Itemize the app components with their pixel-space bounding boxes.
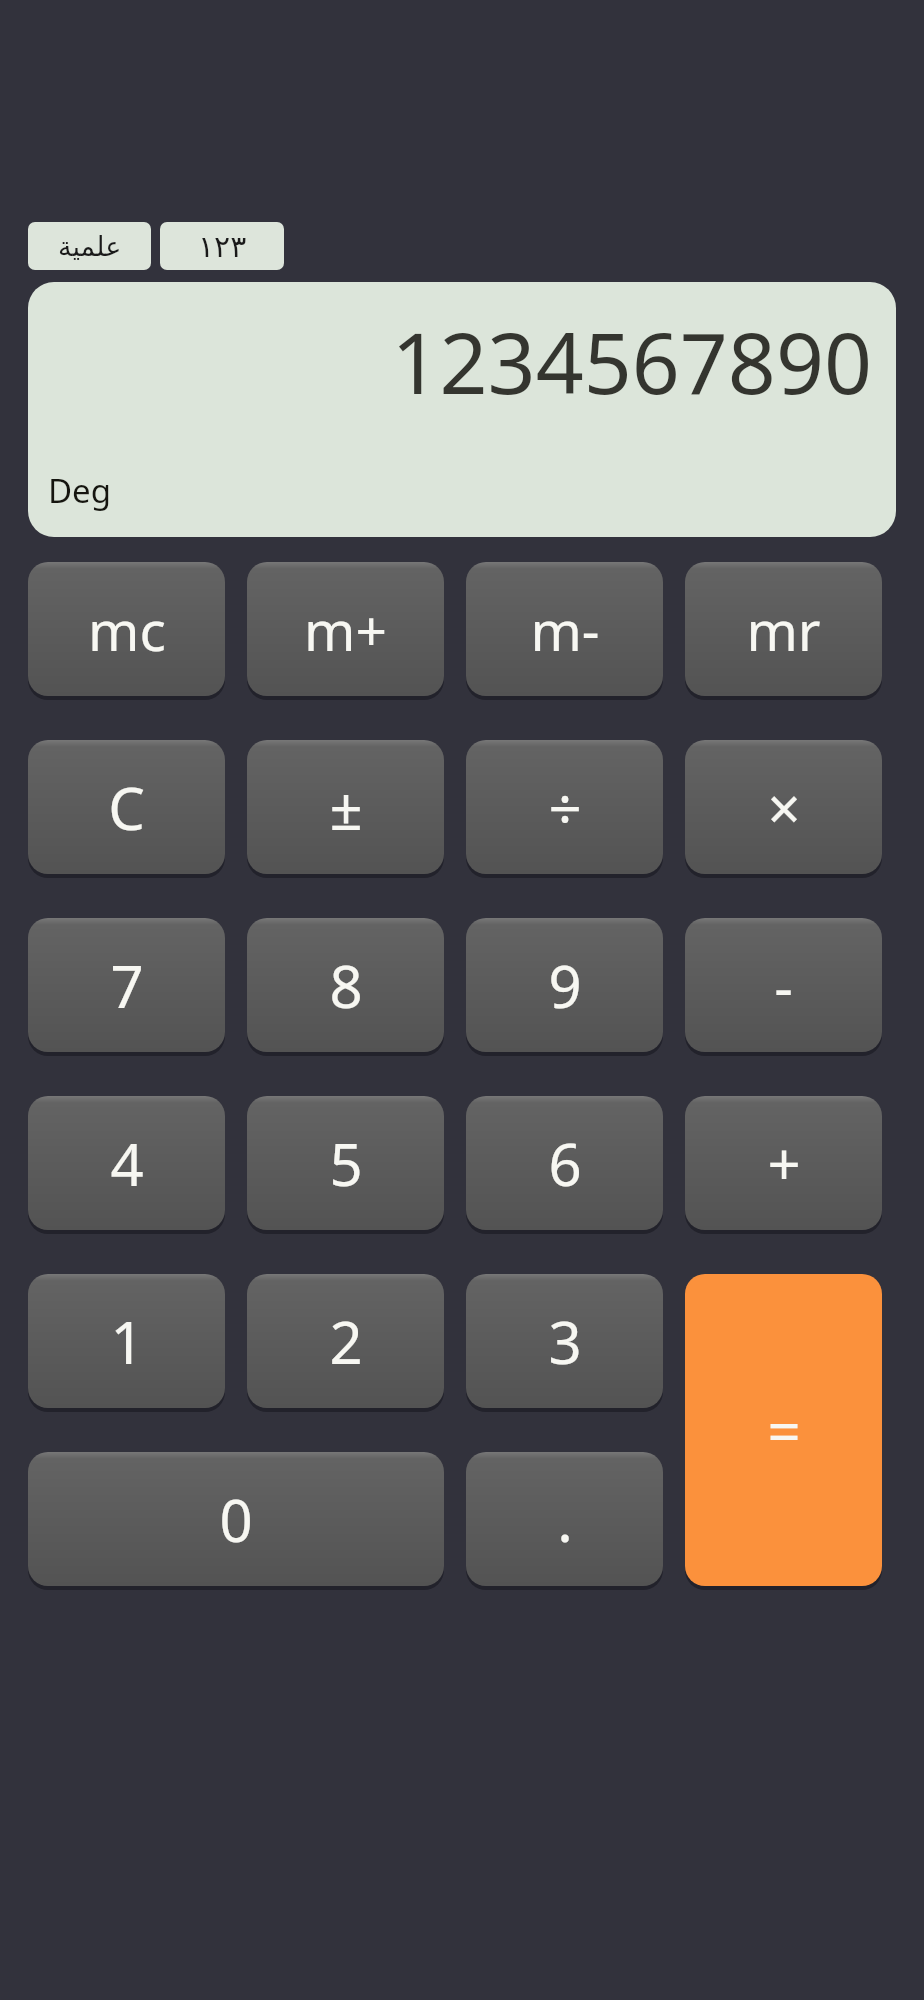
staticText: 2	[329, 1302, 363, 1381]
button[interactable]: 5	[247, 1096, 444, 1230]
button[interactable]: 0	[28, 1452, 444, 1586]
staticText: ÷	[548, 768, 582, 847]
staticText: ١٢٣	[198, 229, 247, 264]
staticText: Deg	[48, 468, 111, 513]
staticText: .	[557, 1480, 573, 1559]
button[interactable]: 8	[247, 918, 444, 1052]
staticText: ±	[329, 768, 363, 847]
button[interactable]: 3	[466, 1274, 663, 1408]
button[interactable]: mr	[685, 562, 882, 696]
staticText: -	[774, 946, 793, 1025]
button[interactable]: 1	[28, 1274, 225, 1408]
staticText: علمية	[58, 231, 122, 262]
button[interactable]: Equals	[685, 1274, 882, 1586]
button[interactable]: علمية	[28, 222, 151, 270]
button[interactable]: 9	[466, 918, 663, 1052]
button[interactable]: m+	[247, 562, 444, 696]
staticText: +	[767, 1124, 801, 1203]
staticText: 6	[548, 1124, 582, 1203]
staticText: 1	[110, 1302, 144, 1381]
button[interactable]: 7	[28, 918, 225, 1052]
button[interactable]: Plus minus sign	[247, 740, 444, 874]
staticText: mc	[88, 592, 166, 667]
staticText: ×	[767, 768, 801, 847]
staticText: 4	[110, 1124, 144, 1203]
button[interactable]: 6	[466, 1096, 663, 1230]
button[interactable]: Minus	[685, 918, 882, 1052]
button[interactable]: 4	[28, 1096, 225, 1230]
staticText: mr	[746, 592, 821, 667]
staticText: 3	[548, 1302, 582, 1381]
staticText: 0	[219, 1480, 253, 1559]
staticText: m+	[304, 592, 387, 667]
staticText: 7	[110, 946, 144, 1025]
staticText: 8	[329, 946, 363, 1025]
button[interactable]: Divide	[466, 740, 663, 874]
staticText: m-	[530, 592, 600, 667]
button[interactable]: Decimal point	[466, 1452, 663, 1586]
button[interactable]: m-	[466, 562, 663, 696]
staticText: 9	[548, 946, 582, 1025]
staticText: 1234567890	[391, 304, 872, 418]
staticText: =	[767, 1391, 801, 1470]
button[interactable]: 2	[247, 1274, 444, 1408]
staticText: 5	[329, 1124, 363, 1203]
button[interactable]: ١٢٣	[160, 222, 284, 270]
staticText: C	[108, 768, 145, 847]
button[interactable]: C	[28, 740, 225, 874]
button[interactable]: mc	[28, 562, 225, 696]
button[interactable]: Plus	[685, 1096, 882, 1230]
button[interactable]: Multiply	[685, 740, 882, 874]
